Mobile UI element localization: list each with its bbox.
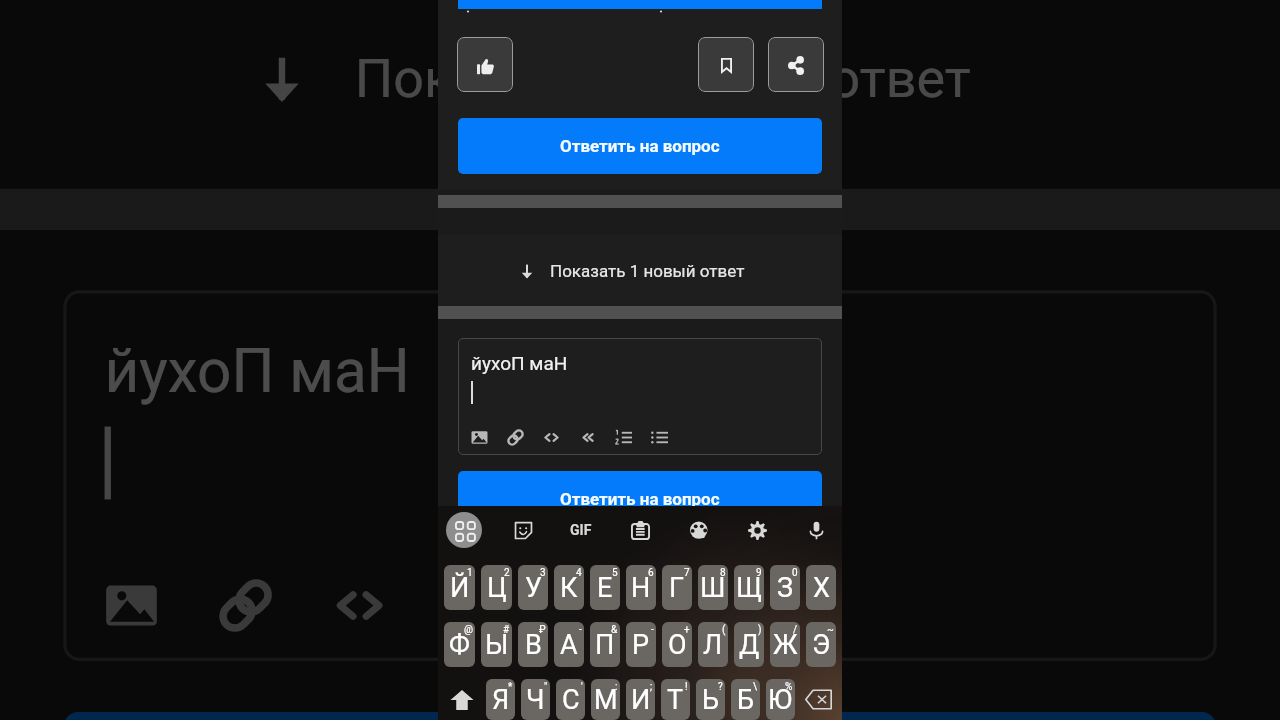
staticText: 1 (467, 567, 473, 579)
button[interactable]: К (554, 565, 584, 610)
button[interactable]: Ж (770, 622, 800, 667)
button[interactable]: Insert code (329, 575, 390, 636)
button[interactable]: Ответить на вопрос (458, 471, 822, 527)
button[interactable]: В (518, 622, 548, 667)
button[interactable]: Ц (481, 565, 512, 610)
button[interactable]: Shift (444, 679, 480, 720)
staticText: У (525, 572, 542, 604)
button[interactable]: Keyboard layouts (446, 512, 482, 548)
button[interactable]: Backspace (801, 679, 836, 720)
button[interactable]: П (590, 622, 620, 667)
staticText: Ф (449, 629, 470, 661)
staticText: Г (669, 572, 685, 604)
button[interactable]: Р (626, 622, 656, 667)
staticText: 0 (792, 567, 798, 579)
button[interactable]: Themes (681, 512, 717, 548)
button[interactable]: Ы (481, 622, 512, 667)
button[interactable]: йухоП маН (63, 290, 1217, 661)
button[interactable]: Й (444, 565, 475, 610)
button[interactable]: Ь (696, 679, 725, 720)
button[interactable]: Quote (578, 428, 597, 447)
staticText: GIF (570, 522, 592, 538)
button[interactable]: Clipboard (622, 512, 658, 548)
staticText: * (508, 681, 513, 693)
staticText: ; (650, 681, 653, 693)
button[interactable]: Ответить на вопрос (63, 712, 1217, 720)
button[interactable]: Ф (444, 622, 475, 667)
button[interactable]: Показать 1 новый ответ (438, 235, 842, 306)
staticText: Ответить на вопрос (560, 136, 720, 156)
staticText: 5 (612, 567, 618, 579)
button[interactable]: Я (486, 679, 515, 720)
staticText: ) (758, 624, 762, 636)
button[interactable]: Показать 1 новый ответ (0, 0, 1280, 189)
button[interactable]: Numbered list (614, 428, 633, 447)
staticText: Т (667, 684, 684, 716)
button[interactable]: Stickers (505, 512, 541, 548)
button[interactable]: Т (661, 679, 690, 720)
button[interactable]: Like (457, 37, 513, 92)
staticText: 7 (684, 567, 690, 579)
staticText: О (668, 629, 687, 661)
staticText: " (544, 681, 548, 693)
staticText: П (595, 629, 615, 661)
button[interactable]: Numbered list (558, 575, 618, 636)
button[interactable]: Б (731, 679, 760, 720)
button[interactable]: Ш (698, 565, 728, 610)
button[interactable]: Г (662, 565, 692, 610)
button[interactable]: Bookmark (698, 37, 754, 92)
button[interactable]: Ю (766, 679, 795, 720)
button[interactable]: Л (698, 622, 728, 667)
staticText: Б (737, 684, 755, 716)
staticText: 3 (540, 567, 546, 579)
button[interactable]: Insert code (542, 428, 561, 447)
staticText: Ответить на вопрос (560, 489, 720, 509)
button[interactable]: Insert image (101, 575, 162, 636)
button[interactable]: Share (768, 37, 824, 92)
staticText: Показать 1 новый ответ (550, 261, 745, 281)
button[interactable]: Insert link (506, 428, 525, 447)
button[interactable]: А (554, 622, 584, 667)
button[interactable]: Settings (739, 512, 775, 548)
button[interactable]: Н (626, 565, 656, 610)
staticText: Р (632, 629, 650, 661)
staticText: : (615, 681, 618, 693)
staticText: 8 (720, 567, 726, 579)
staticText: + (684, 624, 690, 636)
button[interactable]: М (591, 679, 620, 720)
button[interactable]: Voice input (798, 512, 834, 548)
button[interactable]: Bulleted list (650, 428, 669, 447)
staticText: Л (703, 629, 723, 661)
button[interactable]: Quote (444, 575, 504, 636)
button[interactable]: Insert link (215, 575, 276, 636)
staticText: - (651, 624, 654, 636)
staticText: Показать 1 новый ответ (355, 46, 973, 110)
button[interactable]: У (518, 565, 548, 610)
staticText: Я (492, 684, 510, 716)
button[interactable]: Э (806, 622, 836, 667)
button[interactable]: Д (734, 622, 764, 667)
button[interactable]: Ч (521, 679, 550, 720)
button[interactable]: О (662, 622, 692, 667)
button[interactable]: С (556, 679, 585, 720)
staticText: В (525, 629, 542, 661)
button[interactable]: Bulleted list (672, 575, 732, 636)
button[interactable]: Ответить на вопрос (458, 118, 822, 174)
button[interactable]: Insert image (470, 428, 489, 447)
button[interactable]: Е (590, 565, 620, 610)
staticText: С (562, 684, 580, 716)
staticText: Ь (702, 684, 719, 716)
staticText: Ч (526, 684, 545, 716)
button[interactable]: йухоП маН (458, 338, 822, 455)
staticText: 2 (504, 567, 510, 579)
staticText: - (579, 624, 582, 636)
staticText: М (594, 684, 618, 716)
staticText: % (785, 681, 793, 693)
button[interactable]: Щ (734, 565, 764, 610)
button[interactable]: GIF (563, 512, 599, 548)
button[interactable]: З (770, 565, 800, 610)
button[interactable]: И (626, 679, 655, 720)
staticText: / (793, 624, 798, 636)
button[interactable]: Х (806, 565, 836, 610)
